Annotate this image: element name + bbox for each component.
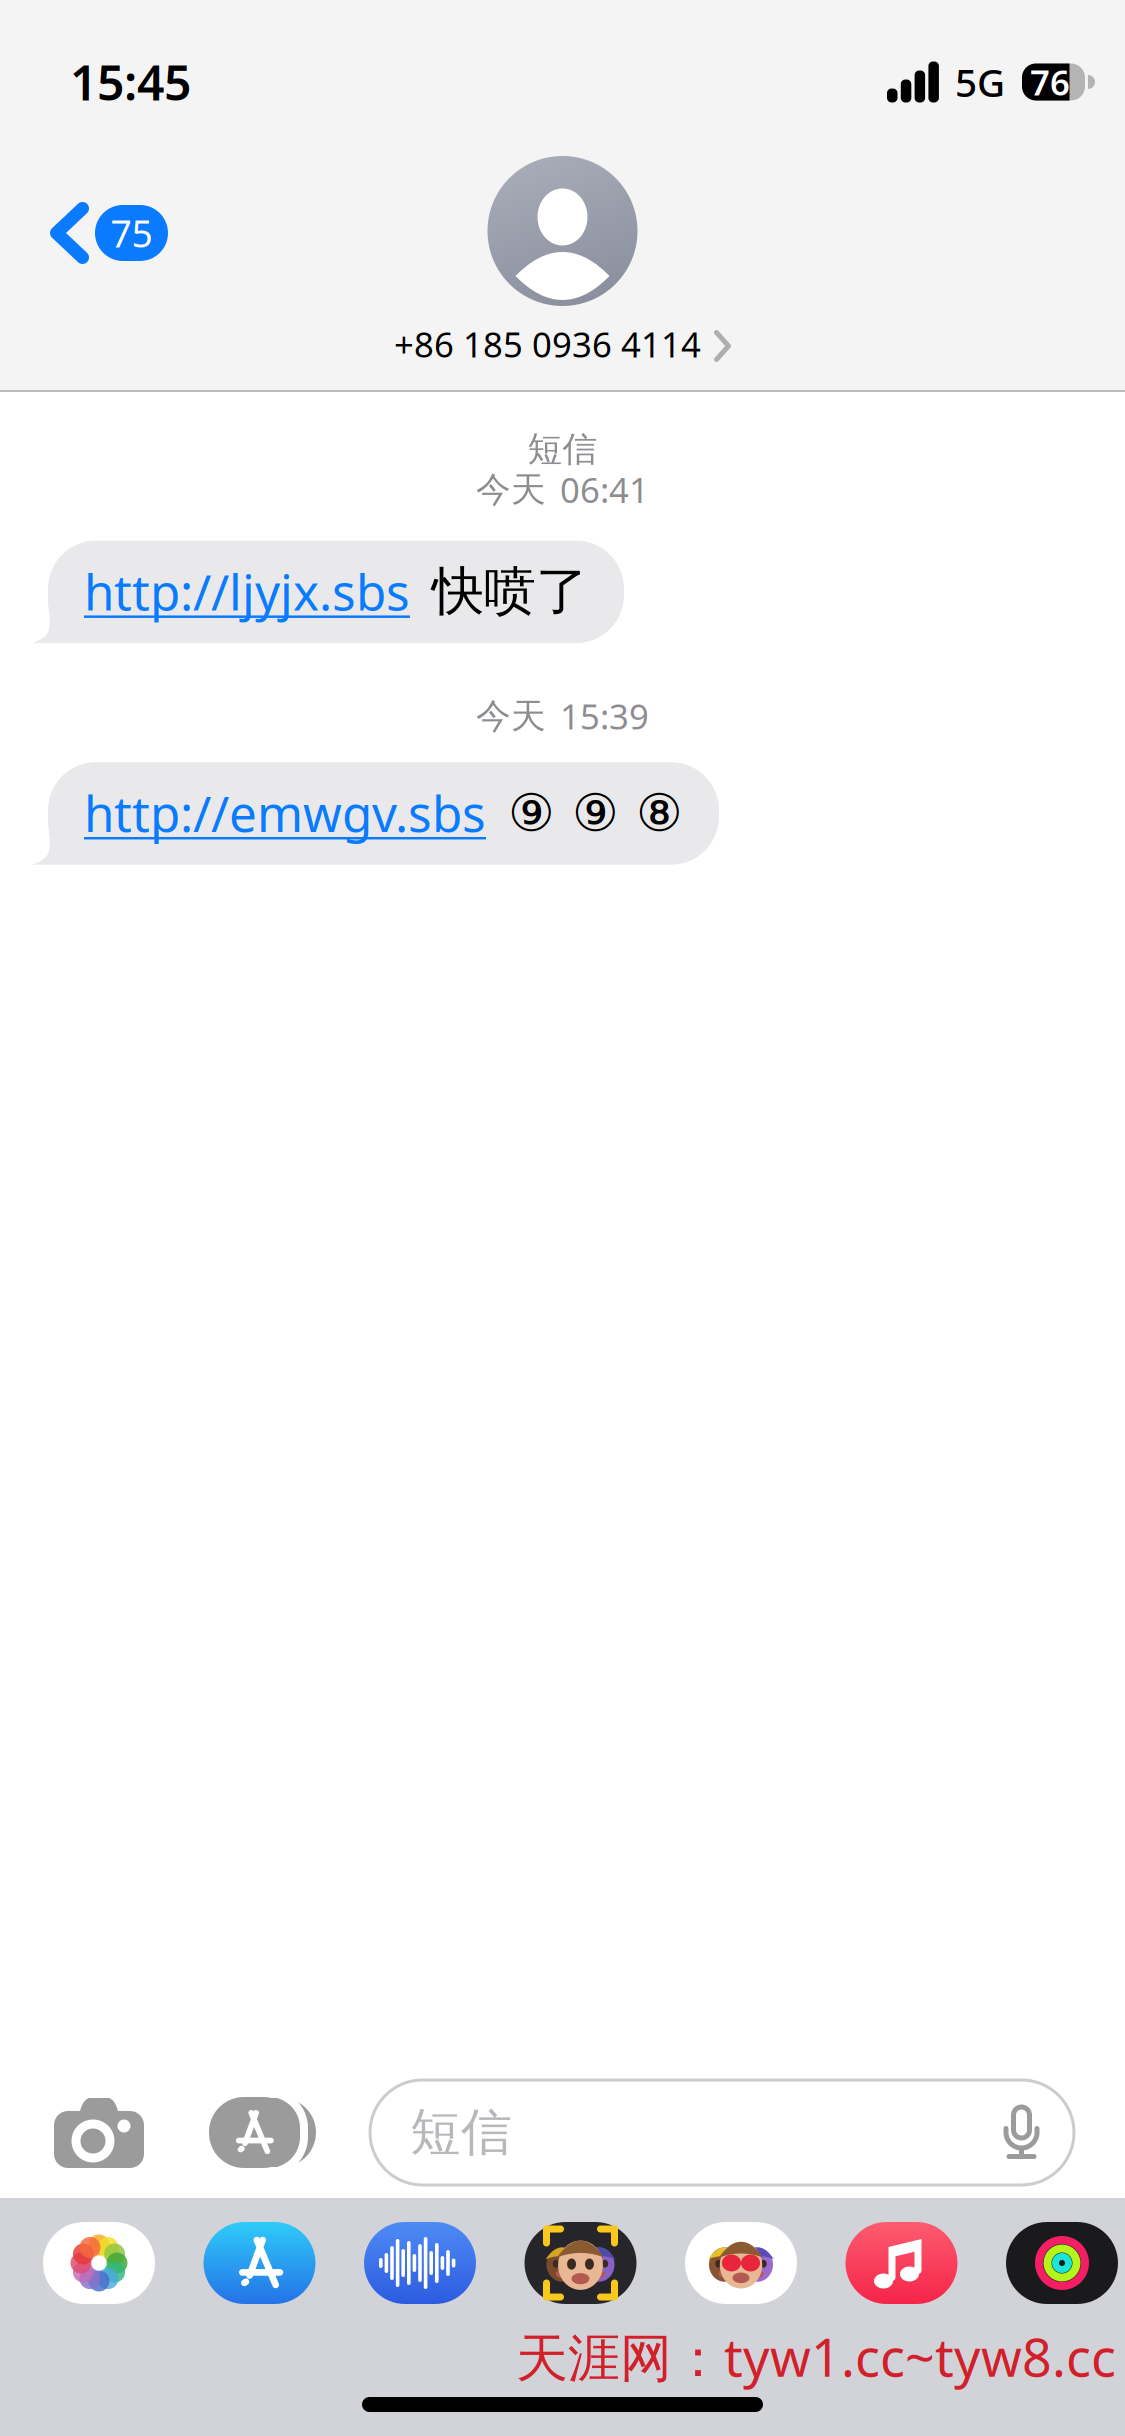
staticText: 5G: [955, 56, 1005, 108]
button[interactable]: 短信: [370, 2080, 1125, 2185]
staticText: 短信: [527, 428, 597, 471]
button[interactable]: Apps: [164, 2081, 316, 2184]
button[interactable]: Music: [845, 2222, 957, 2304]
staticText: 天涯网：tyw1.cc~tyw8.cc: [516, 2322, 1116, 2391]
staticText: http://ljyjx.sbs: [84, 559, 410, 624]
staticText: +86 185 0936 4114: [394, 321, 701, 367]
button[interactable]: Photos: [43, 2222, 155, 2304]
staticText: http://emwgv.sbs: [84, 780, 486, 846]
button[interactable]: App Store: [203, 2222, 315, 2304]
staticText: 15:45: [70, 50, 191, 114]
staticText: 快喷了: [432, 559, 588, 623]
staticText: 06:41: [560, 467, 649, 513]
button[interactable]: Fitness: [1006, 2222, 1118, 2304]
staticText: 75: [110, 208, 152, 258]
staticText: 15:39: [560, 693, 649, 739]
staticText: 76: [1030, 59, 1070, 105]
staticText: 今天: [476, 468, 546, 511]
staticText: 短信: [410, 2101, 512, 2164]
staticText: ⑨ ⑨ ⑧: [508, 783, 683, 842]
button[interactable]: Audio messages: [364, 2222, 476, 2304]
button[interactable]: Memoji: [524, 2222, 636, 2304]
staticText: 今天: [476, 695, 546, 737]
button[interactable]: +86 185 0936 4114: [0, 151, 1125, 367]
button[interactable]: Stickers: [685, 2222, 797, 2304]
button[interactable]: 75: [0, 151, 190, 286]
button[interactable]: Camera: [0, 2081, 164, 2184]
